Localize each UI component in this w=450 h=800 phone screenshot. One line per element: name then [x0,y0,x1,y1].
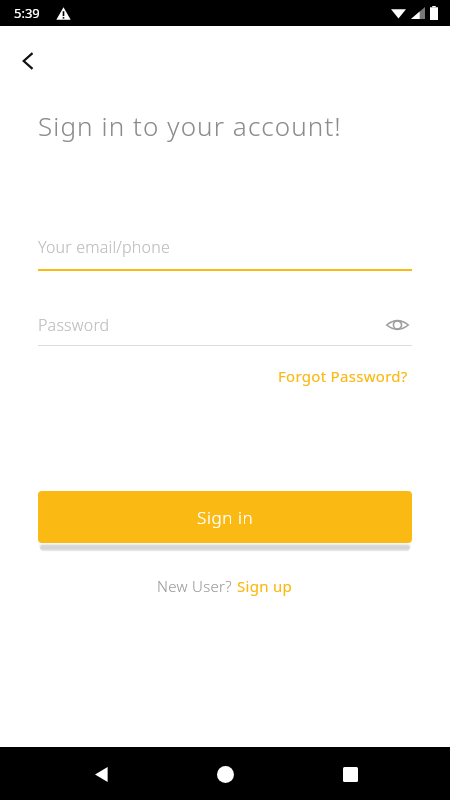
staticText: 5:39 [14,4,40,22]
button[interactable]: Back [77,750,125,798]
staticText: Your email/phone [38,236,170,258]
button[interactable]: Show password [382,310,412,340]
button[interactable]: Home [201,750,249,798]
staticText: Sign in to your account! [38,108,342,143]
button[interactable]: Back [6,38,52,84]
staticText: Forgot Password? [278,366,408,386]
button[interactable]: Sign in [38,491,412,543]
button[interactable]: Sign up [237,576,293,596]
staticText: Password [38,314,110,336]
staticText: Sign in [197,506,254,529]
button[interactable]: Recent apps [326,750,374,798]
staticText: New User? [157,576,237,596]
button[interactable]: Password [38,310,412,340]
button[interactable]: Forgot Password? [274,362,412,390]
button[interactable]: Your email/phone [38,236,412,271]
staticText: Sign up [237,576,293,596]
